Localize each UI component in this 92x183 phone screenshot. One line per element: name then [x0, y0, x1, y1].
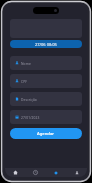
button[interactable]: Home: [5, 168, 25, 177]
button[interactable]: 27/06 08:05: [10, 40, 82, 48]
button[interactable]: Profile: [66, 168, 87, 177]
button[interactable]: Descrição: [10, 92, 82, 106]
staticText: CPF: [21, 79, 28, 83]
button[interactable]: CPF: [10, 74, 82, 88]
staticText: Nome: [21, 61, 31, 65]
button[interactable]: 27/01/2023: [10, 110, 82, 124]
button[interactable]: Nome: [10, 56, 82, 70]
button[interactable]: History: [25, 168, 45, 177]
staticText: Descrição: [21, 97, 37, 101]
staticText: Agendar: [37, 131, 55, 137]
staticText: 27/01/2023: [21, 115, 40, 119]
button[interactable]: Schedule: [45, 168, 66, 177]
staticText: 27/06 08:05: [35, 42, 57, 47]
button[interactable]: Agendar: [10, 128, 82, 139]
